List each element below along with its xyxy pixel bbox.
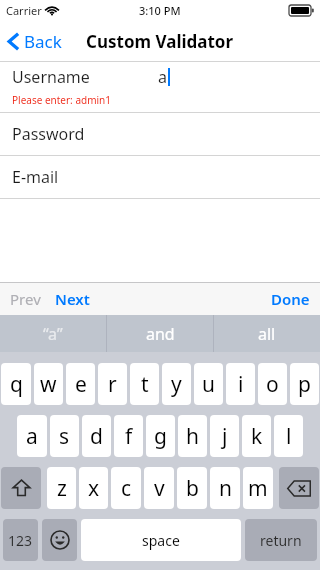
button[interactable]: k (242, 415, 271, 457)
staticText: e (75, 370, 87, 399)
staticText: q (10, 370, 23, 399)
staticText: m (248, 474, 268, 503)
button[interactable]: Shift (1, 467, 41, 509)
button[interactable]: 123 (3, 519, 38, 561)
staticText: k (251, 422, 263, 451)
button[interactable]: v (144, 467, 174, 509)
button[interactable]: Emoji (42, 519, 77, 561)
button[interactable]: z (47, 467, 76, 509)
staticText: Custom Validator (86, 30, 234, 53)
staticText: r (108, 370, 117, 399)
staticText: return (260, 531, 302, 550)
button[interactable]: and (107, 315, 213, 352)
button[interactable]: all (214, 315, 320, 352)
staticText: Next (55, 289, 90, 309)
button[interactable]: e (66, 363, 95, 405)
button[interactable]: b (177, 467, 207, 509)
button[interactable]: p (290, 363, 319, 405)
staticText: Back (24, 30, 62, 53)
staticText: all (258, 323, 276, 345)
button[interactable]: f (114, 415, 143, 457)
staticText: n (219, 474, 232, 503)
staticText: a (158, 66, 167, 88)
button[interactable]: g (146, 415, 175, 457)
button[interactable]: d (82, 415, 111, 457)
button[interactable]: Backspace (279, 467, 319, 509)
staticText: “a” (43, 323, 63, 345)
staticText: l (286, 422, 292, 451)
button[interactable]: l (274, 415, 303, 457)
button[interactable]: m (243, 467, 273, 509)
staticText: c (121, 474, 132, 503)
staticText: E-mail (12, 166, 59, 188)
staticText: 3:10 PM (139, 3, 181, 18)
button[interactable]: n (210, 467, 240, 509)
staticText: d (90, 422, 103, 451)
button[interactable]: j (210, 415, 239, 457)
staticText: Password (12, 123, 85, 145)
staticText: v (154, 474, 165, 503)
button[interactable]: a (17, 415, 47, 457)
button[interactable]: space (81, 519, 241, 561)
button[interactable]: r (98, 363, 127, 405)
staticText: u (202, 370, 215, 399)
staticText: Please enter: admin1 (12, 93, 111, 107)
button[interactable]: Back (0, 26, 70, 57)
button[interactable]: q (1, 363, 31, 405)
staticText: space (142, 531, 180, 550)
staticText: b (186, 474, 199, 503)
button[interactable]: E-mail (0, 156, 320, 198)
button[interactable]: c (111, 467, 141, 509)
staticText: p (298, 370, 311, 399)
button[interactable]: Password (0, 113, 320, 155)
staticText: w (40, 370, 57, 399)
staticText: and (146, 323, 175, 345)
staticText: x (88, 474, 100, 503)
staticText: Done (271, 289, 310, 309)
staticText: h (186, 422, 199, 451)
staticText: Carrier (6, 3, 42, 18)
button[interactable]: o (258, 363, 287, 405)
button[interactable]: y (162, 363, 191, 405)
staticText: y (171, 370, 182, 399)
button[interactable]: Prev (0, 283, 49, 315)
staticText: j (222, 422, 228, 451)
staticText: s (59, 422, 70, 451)
button[interactable]: h (178, 415, 207, 457)
staticText: Username (12, 66, 90, 88)
staticText: 123 (8, 531, 33, 550)
button[interactable]: “a” (0, 315, 106, 352)
button[interactable]: s (50, 415, 79, 457)
staticText: f (125, 422, 133, 451)
staticText: a (26, 422, 38, 451)
staticText: Prev (10, 289, 41, 309)
button[interactable]: u (194, 363, 223, 405)
staticText: o (266, 370, 279, 399)
button[interactable]: Done (261, 283, 320, 315)
button[interactable]: return (245, 519, 317, 561)
staticText: t (141, 370, 149, 399)
staticText: z (57, 474, 67, 503)
button[interactable]: Username (0, 62, 320, 92)
button[interactable]: t (130, 363, 159, 405)
button[interactable]: w (34, 363, 63, 405)
button[interactable]: Next (49, 283, 100, 315)
staticText: i (238, 370, 244, 399)
staticText: g (154, 422, 167, 451)
button[interactable]: x (79, 467, 108, 509)
button[interactable]: i (226, 363, 255, 405)
